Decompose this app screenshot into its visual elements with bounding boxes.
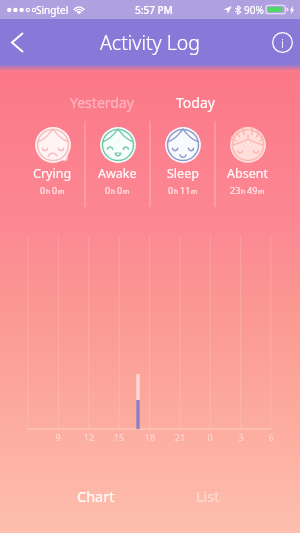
staticText: 0: [200, 431, 220, 443]
staticText: Chart: [77, 486, 115, 506]
staticText: 6: [261, 431, 281, 443]
staticText: 9: [48, 431, 68, 443]
staticText: 0: [52, 184, 58, 196]
button[interactable]: Chart: [40, 466, 151, 521]
button[interactable]: Information: [256, 19, 300, 65]
staticText: Singtel: [36, 3, 69, 17]
staticText: 49: [247, 184, 258, 196]
staticText: 11: [180, 184, 191, 196]
staticText: m: [58, 187, 65, 196]
staticText: 21: [170, 431, 190, 443]
button[interactable]: List: [152, 466, 263, 521]
staticText: i: [281, 34, 285, 52]
button[interactable]: Crying: [20, 121, 85, 207]
staticText: 12: [79, 431, 99, 443]
button[interactable]: Awake: [85, 121, 150, 207]
staticText: 15: [109, 431, 129, 443]
staticText: Crying: [33, 165, 72, 182]
staticText: m: [191, 187, 198, 196]
staticText: 23: [230, 184, 241, 196]
staticText: h: [111, 187, 117, 196]
staticText: 0: [40, 184, 46, 196]
staticText: h: [241, 187, 247, 196]
staticText: Today: [176, 93, 215, 112]
staticText: h: [174, 187, 180, 196]
button[interactable]: Absent: [215, 121, 280, 207]
staticText: 5:57 PM: [135, 3, 173, 17]
staticText: m: [258, 187, 265, 196]
staticText: Activity Log: [100, 29, 201, 56]
button[interactable]: Sleep: [150, 121, 215, 207]
staticText: 0: [168, 184, 174, 196]
staticText: Absent: [227, 165, 268, 182]
staticText: Yesterday: [70, 93, 134, 112]
staticText: 18: [140, 431, 160, 443]
staticText: m: [123, 187, 130, 196]
staticText: 0: [105, 184, 111, 196]
staticText: Sleep: [167, 165, 199, 182]
button[interactable]: Back: [0, 19, 44, 65]
staticText: h: [46, 187, 52, 196]
staticText: 0: [117, 184, 123, 196]
staticText: 3: [231, 431, 251, 443]
staticText: List: [196, 486, 220, 506]
staticText: 90%: [244, 3, 264, 17]
staticText: Awake: [98, 165, 137, 182]
